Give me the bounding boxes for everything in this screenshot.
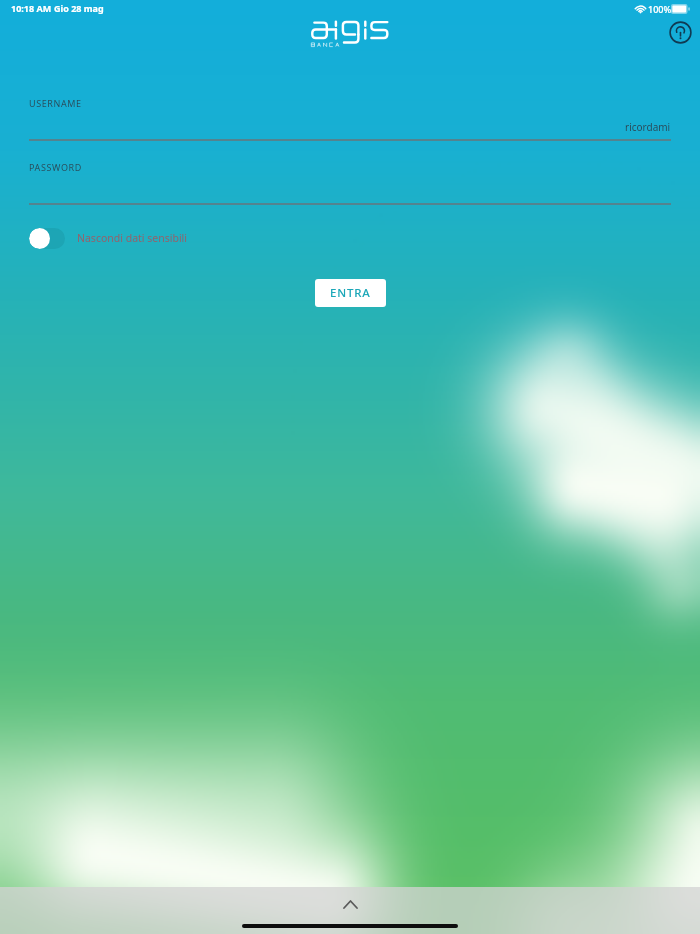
button[interactable]: Expand [335, 894, 365, 914]
staticText: Gio 28 mag [54, 2, 104, 14]
button[interactable]: ricordami [560, 119, 671, 135]
button[interactable]: Help [665, 17, 695, 47]
staticText: PASSWORD [29, 161, 82, 173]
staticText: ENTRA [330, 285, 371, 301]
staticText: ricordami [625, 120, 671, 134]
staticText: Nascondi dati sensibili [77, 231, 188, 245]
staticText: 100% [648, 3, 672, 15]
button[interactable]: ENTRA [315, 279, 386, 307]
staticText: 10:18 AM [11, 2, 52, 14]
button[interactable]: Nascondi dati sensibili [29, 227, 188, 249]
staticText: USERNAME [29, 97, 82, 109]
